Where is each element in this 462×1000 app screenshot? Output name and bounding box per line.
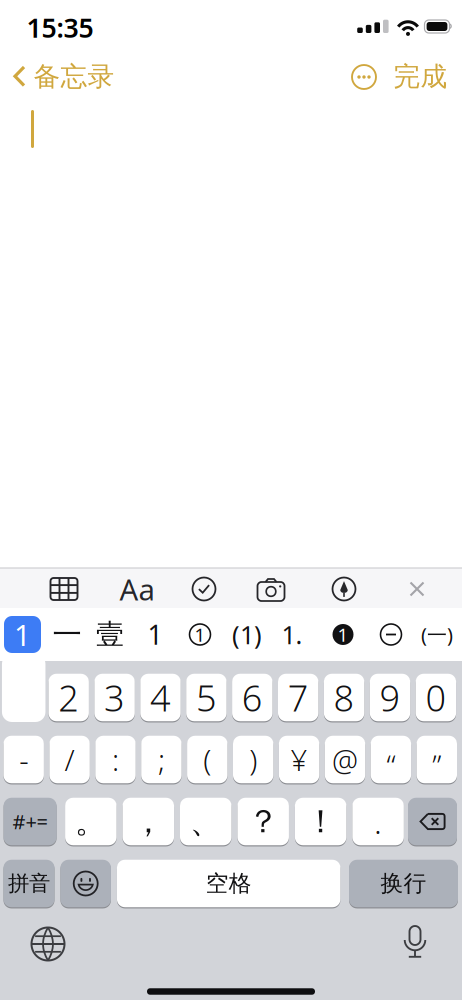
button[interactable]: 7 [278,674,318,721]
button[interactable]: ¥ [279,736,319,783]
staticText: 1 [337,622,348,647]
staticText: (1) [232,618,262,651]
button[interactable]: 5 [186,674,227,721]
button[interactable] [380,624,401,645]
staticText: 3 [104,674,125,721]
staticText: : [112,740,119,779]
button[interactable]: 9 [370,674,410,721]
button[interactable]: 备忘录 [13,54,114,98]
button[interactable]: @ [325,736,365,783]
button[interactable]: 壹 [96,617,124,652]
staticText: 完成 [393,60,447,93]
button[interactable]: 1. [281,618,302,651]
staticText: 一 [52,616,81,652]
staticText: 1 [194,622,205,647]
button[interactable]: 换行 [349,860,458,907]
button[interactable]: #+= [4,798,57,845]
button[interactable]: 1 [332,624,353,645]
staticText: 5 [196,674,217,721]
button[interactable]: 2 [48,674,89,721]
staticText: 6 [242,674,263,721]
button[interactable]: 0 [416,674,456,721]
button[interactable]: 3 [94,674,135,721]
staticText: 空格 [206,870,252,897]
staticText: 1. [281,618,302,651]
button[interactable]: Format [119,569,154,608]
button[interactable]: Next keyboard [30,926,66,962]
button[interactable]: 1 [189,624,210,645]
staticText: 15:35 [26,10,93,45]
button[interactable]: More [349,62,379,92]
staticText: (一) [421,621,453,648]
button[interactable]: ！ [295,798,346,845]
staticText: 2 [58,674,79,721]
staticText: 4 [150,674,171,721]
staticText: 7 [288,674,309,721]
button[interactable]: ” [417,736,457,783]
button[interactable]: 、 [180,798,231,845]
staticText: 壹 [96,617,124,652]
button[interactable]: : [95,736,136,783]
button[interactable]: Dismiss toolbar [409,581,424,596]
button[interactable]: Delete [408,798,457,845]
staticText: ¥ [291,740,308,779]
staticText: 1 [147,617,162,652]
button[interactable]: ; [141,736,182,783]
staticText: . [374,800,382,843]
staticText: ” [432,745,441,784]
staticText: / [65,740,75,779]
button[interactable]: 1 [2,654,45,722]
button[interactable]: “ [371,736,411,783]
button[interactable]: (1) [232,618,262,651]
staticText: ？ [247,802,279,841]
staticText: - [19,740,28,779]
button[interactable]: 4 [140,674,181,721]
button[interactable]: Emoji [60,860,111,907]
staticText: 换行 [380,870,426,897]
staticText: 。 [75,802,107,841]
staticText: #+= [13,808,48,835]
button[interactable]: 。 [65,798,117,845]
staticText: @ [332,740,358,779]
staticText: 9 [379,674,400,721]
button[interactable]: 6 [232,674,272,721]
button[interactable]: 完成 [393,60,447,93]
staticText: ！ [305,802,337,841]
staticText: 8 [334,674,355,721]
button[interactable]: ) [233,736,273,783]
button[interactable]: ( [187,736,227,783]
staticText: “ [386,745,395,784]
button[interactable]: Insert table [49,575,79,603]
button[interactable]: 8 [324,674,364,721]
button[interactable]: ？ [237,798,289,845]
staticText: 0 [425,674,446,721]
button[interactable]: 一 [52,616,81,652]
button[interactable]: Dictate [403,925,427,958]
button[interactable]: Checklist [191,576,217,602]
button[interactable]: Markup [331,576,357,602]
button[interactable]: ， [123,798,174,845]
staticText: Aa [119,569,154,608]
staticText: 、 [190,802,222,841]
staticText: ( [203,740,211,779]
staticText: 1 [14,615,31,654]
button[interactable]: 拼音 [3,860,54,907]
button[interactable]: . [352,798,404,845]
staticText: ; [158,740,165,779]
button[interactable]: 1 [4,616,41,653]
button[interactable]: 空格 [117,860,340,907]
button[interactable]: 1 [147,617,162,652]
button[interactable]: - [3,736,44,783]
staticText: ) [249,740,257,779]
staticText: ， [132,802,164,841]
button[interactable]: / [49,736,90,783]
staticText: 拼音 [8,870,50,897]
button[interactable]: (一) [421,621,453,648]
staticText: 备忘录 [33,60,114,93]
button[interactable]: Insert photo [256,577,285,601]
